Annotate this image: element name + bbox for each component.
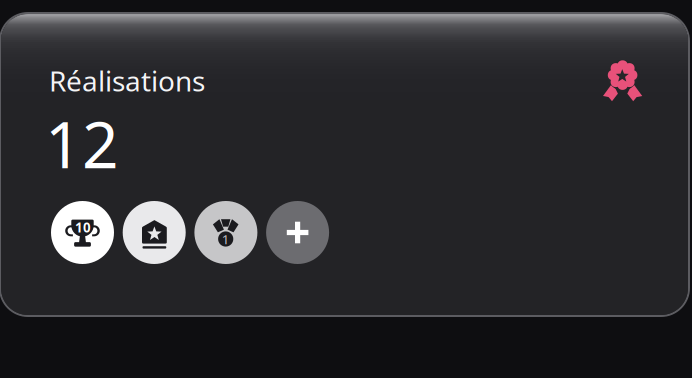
staticText: 12 xyxy=(45,101,119,186)
button[interactable]: Toutes les réalisations xyxy=(603,58,643,104)
staticText: 10 xyxy=(75,218,91,236)
button[interactable]: Médaille, 1re place xyxy=(194,201,257,264)
staticText: Réalisations xyxy=(49,62,205,99)
button[interactable]: Insigne étoile xyxy=(123,201,186,264)
staticText: 1 xyxy=(222,230,230,248)
button[interactable]: Trophée, niveau 10 xyxy=(51,201,114,264)
button[interactable]: Ajouter une réalisation xyxy=(266,201,329,264)
